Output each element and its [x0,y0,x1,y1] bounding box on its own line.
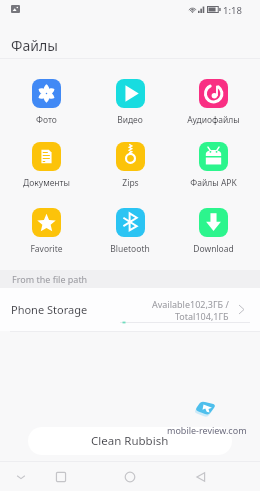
staticText: Download [193,243,234,254]
button[interactable]: Home [116,463,144,491]
button[interactable]: Recents [47,463,75,491]
button[interactable]: Документы [6,140,86,188]
button[interactable]: Аудиофайлы [173,77,253,125]
button[interactable]: Фото [6,77,86,125]
staticText: 1:18 [223,4,242,17]
staticText: Аудиофайлы [187,114,240,125]
button[interactable]: Hide keyboard [7,463,35,491]
button[interactable]: Файлы APK [173,140,253,188]
staticText: From the file path [12,273,88,285]
staticText: Файлы APK [190,177,237,188]
button[interactable]: Download [173,206,253,254]
staticText: Total104,1ГБ [175,310,229,322]
staticText: Файлы [11,36,58,55]
button[interactable]: Phone Storage [0,288,260,331]
button[interactable]: Clean Rubbish [28,427,232,455]
staticText: mobile-review.com [167,424,247,436]
staticText: Clean Rubbish [91,433,169,449]
button[interactable]: Видео [90,77,170,125]
staticText: Available102,3ГБ / [152,298,229,310]
button[interactable]: Zips [90,140,170,188]
button[interactable]: Back [187,463,215,491]
staticText: Zips [122,177,139,188]
button[interactable]: Bluetooth [90,206,170,254]
staticText: Документы [23,177,70,188]
staticText: Видео [117,114,143,125]
staticText: Phone Storage [11,302,88,317]
button[interactable]: Favorite [6,206,86,254]
staticText: Фото [36,114,57,125]
staticText: Favorite [30,243,63,254]
staticText: Bluetooth [110,243,150,254]
